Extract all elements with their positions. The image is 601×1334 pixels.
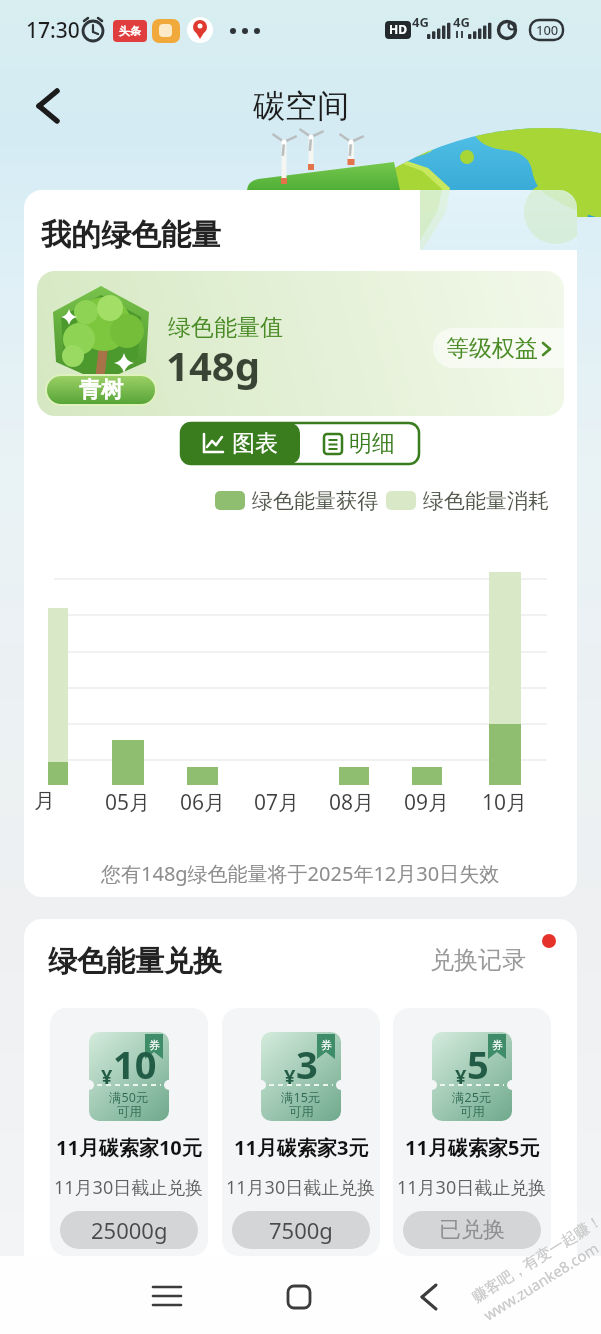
staticText: 可用 <box>289 1104 314 1120</box>
staticText: 11月30日截止兑换 <box>54 1175 204 1200</box>
staticText: ¥ <box>284 1063 296 1090</box>
staticText: 券 <box>149 1038 160 1052</box>
staticText: 您有148g绿色能量将于2025年12月30日失效 <box>101 860 500 887</box>
staticText: 满25元 <box>452 1089 492 1106</box>
staticText: 我的绿色能量 <box>41 216 221 254</box>
button[interactable]: ¥ <box>222 1008 380 1256</box>
staticText: 10月 <box>482 788 528 817</box>
button[interactable] <box>274 1275 324 1320</box>
staticText: 绿色能量值 <box>168 313 283 342</box>
staticText: ¥ <box>455 1063 467 1090</box>
button[interactable]: 已兑换 <box>403 1211 541 1249</box>
staticText: 08月 <box>329 788 375 817</box>
staticText: 25000g <box>91 1215 168 1245</box>
staticText: 券 <box>492 1038 503 1052</box>
button[interactable]: 图表 <box>181 423 300 464</box>
staticText: 等级权益 <box>446 334 538 363</box>
staticText: 4G <box>453 13 470 31</box>
staticText: 5 <box>467 1038 489 1090</box>
staticText: 图表 <box>232 429 278 458</box>
button[interactable]: 25000g <box>60 1211 198 1249</box>
staticText: 券 <box>321 1038 332 1052</box>
staticText: 07月 <box>254 788 300 817</box>
staticText: 赚客吧，有变一起赚！ www.zuanke8.com <box>469 1211 601 1325</box>
button[interactable]: ¥ <box>50 1008 208 1256</box>
staticText: 17:30 <box>26 16 80 45</box>
staticText: 绿色能量兑换 <box>48 943 222 980</box>
button[interactable] <box>142 1275 192 1320</box>
staticText: 11月碳索家5元 <box>405 1134 540 1161</box>
staticText: 碳空间 <box>253 86 349 126</box>
staticText: 绿色能量消耗 <box>423 488 549 514</box>
staticText: 满50元 <box>109 1089 149 1106</box>
button[interactable]: ¥ <box>393 1008 551 1256</box>
staticText: 青树 <box>79 376 123 404</box>
staticText: 可用 <box>117 1104 142 1120</box>
button[interactable] <box>405 1275 455 1320</box>
staticText: 11月30日截止兑换 <box>226 1175 376 1200</box>
staticText: 100 <box>536 21 559 39</box>
staticText: 头条 <box>119 24 141 38</box>
staticText: 09月 <box>404 788 450 817</box>
button[interactable]: 等级权益 <box>433 328 564 368</box>
staticText: 满15元 <box>281 1089 321 1106</box>
staticText: 10 <box>113 1038 157 1090</box>
staticText: 11月30日截止兑换 <box>397 1175 547 1200</box>
button[interactable]: 7500g <box>232 1211 370 1249</box>
staticText: 7500g <box>269 1215 333 1245</box>
button[interactable]: 兑换记录 <box>430 945 526 975</box>
staticText: 148g <box>166 338 260 392</box>
staticText: ¥ <box>101 1063 113 1090</box>
staticText: 月 <box>34 788 55 814</box>
staticText: 可用 <box>460 1104 485 1120</box>
staticText: 11月碳索家3元 <box>234 1134 369 1161</box>
staticText: 已兑换 <box>439 1216 505 1244</box>
staticText: 绿色能量获得 <box>252 488 378 514</box>
button[interactable] <box>28 82 70 130</box>
staticText: HD <box>389 21 407 37</box>
staticText: 兑换记录 <box>430 945 526 975</box>
staticText: 11月碳索家10元 <box>56 1134 202 1161</box>
staticText: 4G <box>412 13 429 31</box>
staticText: 05月 <box>105 788 151 817</box>
staticText: 06月 <box>180 788 226 817</box>
staticText: 3 <box>296 1038 318 1090</box>
staticText: 明细 <box>349 429 395 458</box>
button[interactable]: 明细 <box>300 423 419 464</box>
